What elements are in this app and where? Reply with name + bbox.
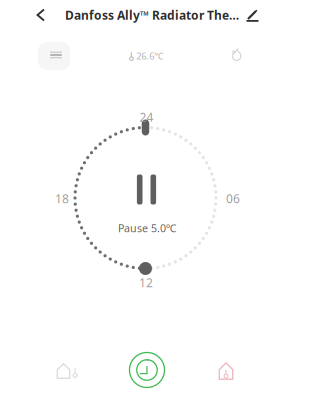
staticText: Pause 5.0℃ xyxy=(118,221,177,235)
staticText: 26.6℃ xyxy=(136,50,163,62)
staticText: 06 xyxy=(226,190,240,206)
staticText: 18 xyxy=(55,190,69,206)
button[interactable]: Heating zones xyxy=(191,349,261,393)
staticText: 12 xyxy=(139,274,153,290)
staticText: 24 xyxy=(139,109,153,125)
button[interactable]: Schedule list xyxy=(38,42,70,70)
staticText: Danfoss Ally™ Radiator The… xyxy=(65,7,239,23)
button[interactable]: Schedule xyxy=(112,348,182,392)
button[interactable]: Home xyxy=(32,349,102,393)
button[interactable]: Heating mode xyxy=(222,41,250,69)
button[interactable]: Rename xyxy=(238,2,266,28)
button[interactable]: Back xyxy=(24,0,58,30)
